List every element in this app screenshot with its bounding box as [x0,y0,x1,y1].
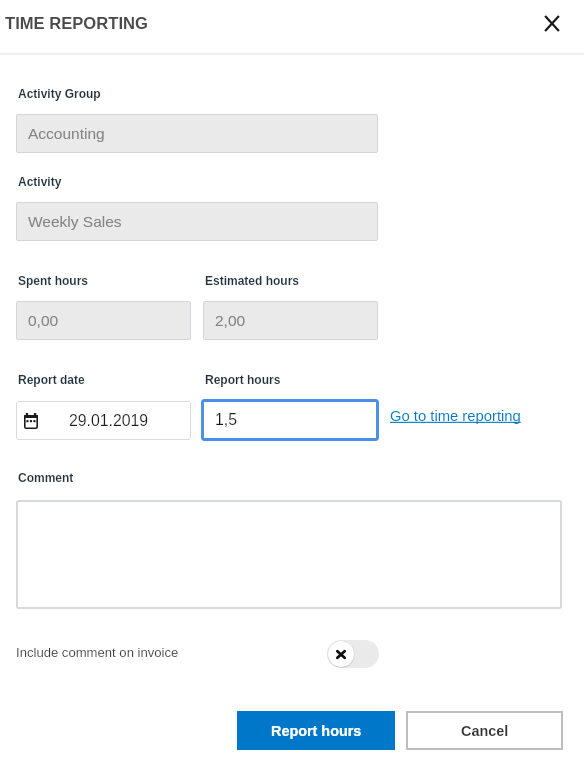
button[interactable]: 1,5 [201,399,379,441]
button[interactable]: Include comment on invoice [327,640,379,668]
staticText: Activity [18,175,62,188]
button[interactable]: Cancel [406,711,563,750]
staticText: Weekly Sales [28,213,122,230]
staticText: Spent hours [18,274,89,287]
staticText: Accounting [28,125,105,142]
staticText: Comment [18,471,74,484]
button[interactable]: 0,00 [16,301,191,340]
button[interactable]: Report hours [237,711,395,750]
button[interactable]: 2,00 [203,301,378,340]
staticText: Report hours [205,373,281,386]
button[interactable] [16,500,562,609]
staticText: Activity Group [18,87,101,100]
button[interactable]: 29.01.2019 [16,401,191,440]
staticText: 29.01.2019 [69,412,149,430]
staticText: Estimated hours [205,274,300,287]
staticText: 2,00 [215,312,246,329]
button[interactable]: Close [532,3,572,43]
staticText: Include comment on invoice [16,645,179,660]
button[interactable]: Go to time reporting [390,408,521,425]
staticText: Report date [18,373,85,386]
staticText: TIME REPORTING [5,14,148,33]
staticText: 0,00 [28,312,59,329]
button[interactable]: Accounting [16,114,378,153]
staticText: 1,5 [215,411,237,429]
staticText: Cancel [461,723,509,739]
button[interactable]: Weekly Sales [16,202,378,241]
staticText: Report hours [271,723,362,739]
